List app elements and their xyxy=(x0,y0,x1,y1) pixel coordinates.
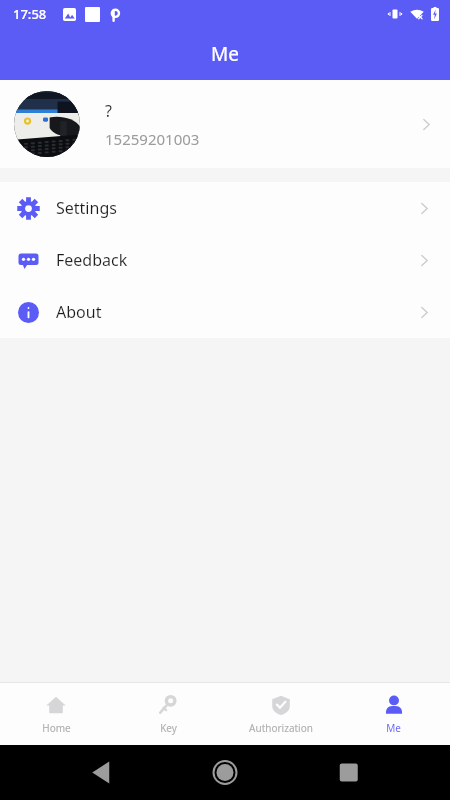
button[interactable]: Me xyxy=(337,683,450,745)
staticText: 15259201003 xyxy=(105,129,200,149)
staticText: Authorization xyxy=(249,721,313,735)
staticText: Home xyxy=(42,721,71,735)
button[interactable]: Feedback xyxy=(0,234,450,286)
staticText: 17:58 xyxy=(13,5,47,23)
staticText: About xyxy=(56,301,415,323)
staticText: Settings xyxy=(56,197,415,219)
button[interactable]: About xyxy=(0,286,450,338)
staticText: Me xyxy=(211,41,239,67)
staticText: Me xyxy=(386,721,401,735)
button[interactable]: Home xyxy=(0,683,112,745)
staticText: Feedback xyxy=(56,249,415,271)
staticText: Key xyxy=(160,721,177,735)
button[interactable]: Key xyxy=(112,683,224,745)
button[interactable]: Settings xyxy=(0,182,450,234)
button[interactable]: Authorization xyxy=(224,683,337,745)
button[interactable]: ? xyxy=(0,80,450,168)
staticText: ? xyxy=(105,100,112,122)
